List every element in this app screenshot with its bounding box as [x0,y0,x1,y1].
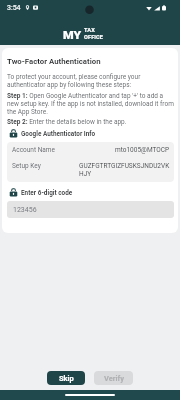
staticText: To protect your account, please configur… [7,73,174,89]
staticText: Google Authenticator Info [21,130,96,138]
button[interactable]: Verify [94,371,133,385]
staticText: mto1005@MTOCP [115,146,170,154]
staticText: Enter 6-digit code [21,189,73,197]
staticText: OFFICE [84,34,104,41]
staticText: Verify [104,374,124,383]
staticText: GUZFGTRTGIZFUSKSJNDU2VKHJY [79,162,170,178]
staticText: Step 2: Enter the details below in the a… [7,118,127,126]
staticText: Step 1: Open Google Authenticator and ta… [7,92,174,116]
staticText: Skip [59,374,74,383]
staticText: 123456 [13,206,37,214]
staticText: Two-Factor Authentication [7,57,101,66]
staticText: TAX [84,27,96,34]
button[interactable]: 123456 [7,201,174,218]
staticText: Account Name [12,146,55,154]
button[interactable]: Skip [47,371,85,385]
staticText: Setup Key [12,162,41,170]
staticText: 3:54 [7,4,21,12]
staticText: MY [63,30,81,42]
